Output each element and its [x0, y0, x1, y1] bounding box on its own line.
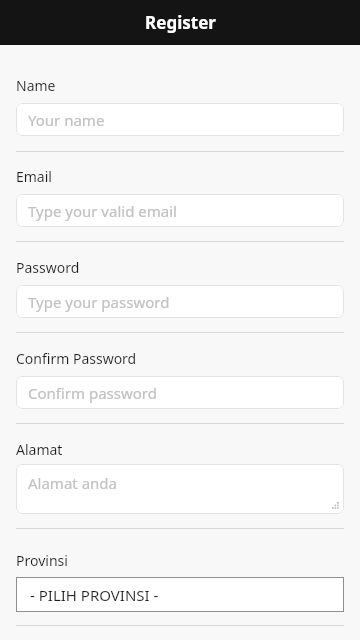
staticText: Register [145, 11, 216, 34]
staticText: Your name [28, 110, 105, 130]
staticText: Password [16, 258, 80, 277]
staticText: Confirm Password [16, 349, 137, 368]
staticText: Type your password [28, 292, 170, 312]
staticText: Name [16, 76, 56, 95]
staticText: Email [16, 167, 52, 186]
staticText: Alamat [16, 440, 63, 459]
button[interactable]: Type your valid email [16, 194, 344, 227]
staticText: - PILIH PROVINSI - [30, 585, 159, 605]
button[interactable]: Your name [16, 103, 344, 136]
staticText: Type your valid email [28, 201, 177, 221]
staticText: Provinsi [16, 551, 68, 570]
button[interactable]: Alamat anda [16, 464, 344, 514]
button[interactable]: Type your password [16, 285, 344, 318]
staticText: Alamat anda [28, 473, 117, 493]
button[interactable]: Confirm password [16, 376, 344, 409]
button[interactable]: Select province [16, 577, 344, 612]
staticText: Confirm password [28, 383, 157, 403]
